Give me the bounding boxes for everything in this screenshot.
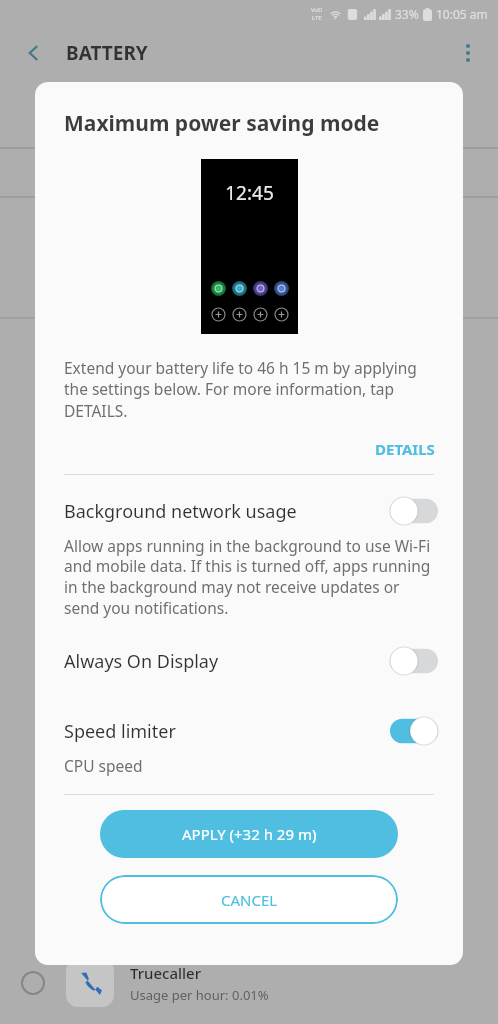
button[interactable]: CANCEL: [100, 875, 398, 924]
staticText: Speed limiter: [64, 719, 390, 744]
button[interactable]: More options: [448, 33, 488, 73]
staticText: 12:45: [225, 180, 274, 206]
staticText: CPU speed: [64, 755, 143, 776]
staticText: Extend your battery life to 46 h 15 m by…: [64, 357, 437, 422]
staticText: Maximum power saving mode: [64, 109, 380, 138]
staticText: Background network usage: [64, 499, 390, 524]
staticText: Always On Display: [64, 649, 390, 674]
staticText: LTE: [312, 14, 322, 22]
staticText: APPLY (+32 h 29 m): [182, 824, 317, 844]
staticText: Allow apps running in the background to …: [64, 535, 435, 619]
button[interactable]: Always On Display: [35, 647, 463, 675]
button[interactable]: Back: [14, 33, 54, 73]
button[interactable]: Off: [390, 647, 438, 675]
button[interactable]: On: [390, 717, 438, 745]
button[interactable]: APPLY (+32 h 29 m): [100, 810, 398, 858]
button[interactable]: Speed limiter: [35, 717, 463, 776]
staticText: 33%: [395, 6, 419, 22]
staticText: 10:05 am: [436, 6, 488, 22]
staticText: BATTERY: [66, 40, 148, 66]
staticText: CANCEL: [221, 890, 278, 910]
staticText: Truecaller: [130, 963, 202, 983]
staticText: Usage per hour: 0.01%: [130, 986, 269, 1004]
button[interactable]: Off: [390, 497, 438, 525]
button[interactable]: Background network usage: [35, 497, 463, 619]
button[interactable]: Truecaller: [0, 946, 498, 1020]
staticText: DETAILS: [375, 439, 435, 459]
staticText: VoD: [311, 6, 323, 14]
button[interactable]: DETAILS: [369, 436, 441, 462]
